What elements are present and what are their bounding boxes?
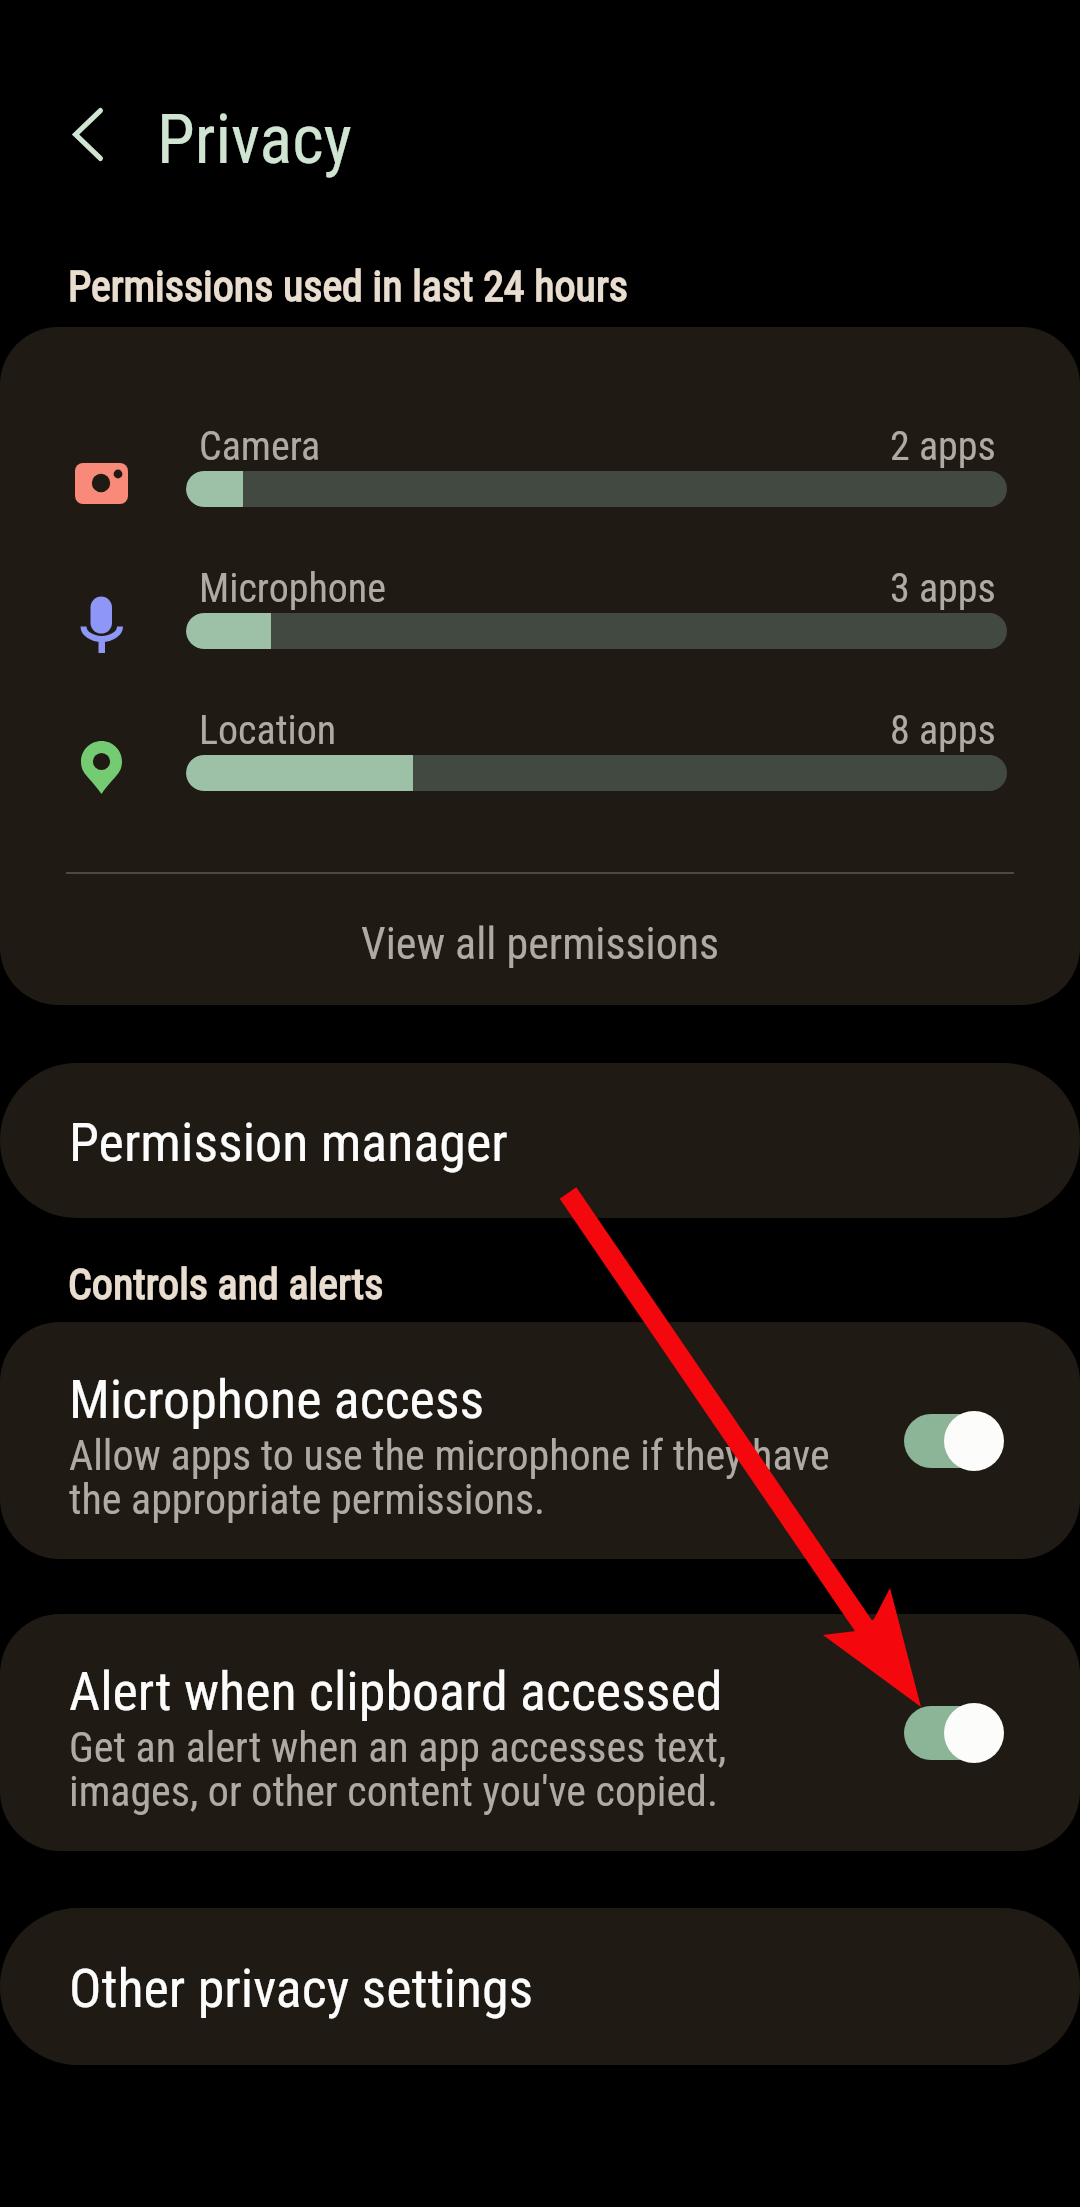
staticText: Camera	[199, 423, 321, 470]
staticText: View all permissions	[361, 918, 720, 970]
staticText: Privacy	[157, 100, 352, 180]
staticText: Allow apps to use the microphone if they…	[69, 1431, 830, 1480]
button[interactable]: Microphone access	[0, 1322, 1080, 1559]
staticText: 3 apps	[890, 565, 996, 612]
button[interactable]: Navigate up	[56, 102, 120, 166]
button[interactable]: Other privacy settings	[0, 1908, 1080, 2065]
staticText: Alert when clipboard accessed	[69, 1660, 723, 1723]
staticText: Permission manager	[69, 1111, 508, 1174]
button[interactable]: View all permissions	[0, 874, 1080, 1005]
staticText: 8 apps	[890, 707, 996, 754]
staticText: images, or other content you've copied.	[69, 1767, 718, 1816]
staticText: Microphone access	[69, 1368, 485, 1431]
button[interactable]: Alert when clipboard accessed	[0, 1614, 1080, 1851]
staticText: Microphone	[199, 565, 386, 612]
staticText: Controls and alerts	[68, 1260, 384, 1309]
button[interactable]: Toggle on	[904, 1702, 1004, 1764]
staticText: Permissions used in last 24 hours	[68, 262, 628, 311]
button[interactable]: Permission manager	[0, 1063, 1080, 1218]
staticText: the appropriate permissions.	[69, 1475, 546, 1524]
staticText: Location	[199, 707, 337, 754]
button[interactable]: Toggle on	[904, 1410, 1004, 1472]
staticText: Get an alert when an app accesses text,	[69, 1723, 727, 1772]
staticText: Other privacy settings	[69, 1957, 534, 2020]
staticText: 2 apps	[890, 423, 996, 470]
